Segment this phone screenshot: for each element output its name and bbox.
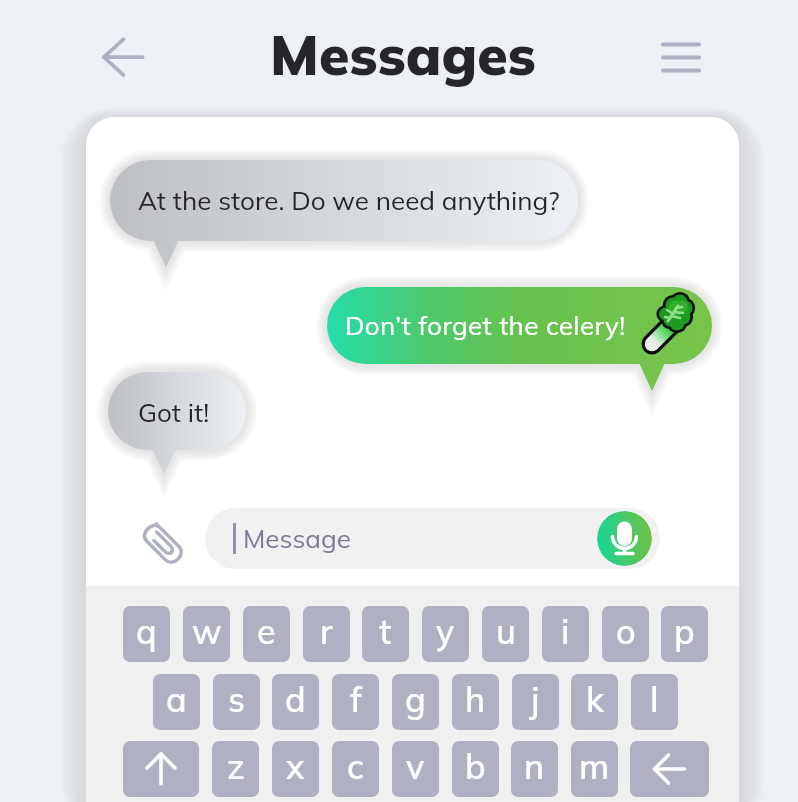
button[interactable]: r xyxy=(303,606,350,662)
button[interactable]: t xyxy=(362,606,409,662)
button[interactable]: j xyxy=(512,674,559,730)
staticText: l xyxy=(650,678,659,721)
staticText: t xyxy=(379,610,392,653)
button[interactable]: s xyxy=(213,674,260,730)
button[interactable]: a xyxy=(153,674,200,730)
button[interactable]: y xyxy=(422,606,469,662)
staticText: j xyxy=(531,678,540,721)
staticText: i xyxy=(561,610,570,653)
button[interactable]: c xyxy=(332,741,379,797)
staticText: p xyxy=(674,610,695,653)
staticText: Don’t forget the celery! xyxy=(345,309,626,342)
button[interactable]: u xyxy=(482,606,529,662)
button[interactable]: h xyxy=(452,674,499,730)
staticText: u xyxy=(496,610,516,653)
button[interactable]: d xyxy=(272,674,319,730)
staticText: s xyxy=(228,678,245,721)
button[interactable]: Don’t forget the celery! xyxy=(301,261,738,417)
button[interactable]: Shift xyxy=(123,741,199,797)
button[interactable]: Record voice message xyxy=(597,511,652,566)
button[interactable]: Backspace xyxy=(630,741,709,797)
staticText: Messages xyxy=(270,19,536,88)
button[interactable]: Message xyxy=(205,508,660,569)
button[interactable]: Got it! xyxy=(86,346,272,500)
staticText: e xyxy=(257,610,276,653)
button[interactable]: m xyxy=(571,741,618,797)
staticText: z xyxy=(227,745,245,788)
staticText: y xyxy=(436,610,455,653)
button[interactable]: n xyxy=(511,741,558,797)
button[interactable]: o xyxy=(602,606,649,662)
button[interactable]: x xyxy=(272,741,319,797)
button[interactable]: z xyxy=(212,741,259,797)
staticText: Got it! xyxy=(138,396,210,429)
button[interactable]: Menu xyxy=(648,26,714,92)
staticText: m xyxy=(579,745,610,788)
staticText: b xyxy=(465,745,486,788)
button[interactable]: q xyxy=(123,606,170,662)
button[interactable]: l xyxy=(631,674,678,730)
button[interactable]: e xyxy=(243,606,290,662)
button[interactable]: At the store. Do we need anything? xyxy=(86,134,604,293)
button[interactable]: w xyxy=(183,606,230,662)
staticText: d xyxy=(285,678,306,721)
staticText: k xyxy=(586,678,604,721)
button[interactable]: g xyxy=(392,674,439,730)
button[interactable]: v xyxy=(392,741,439,797)
staticText: c xyxy=(347,745,364,788)
staticText: g xyxy=(405,678,426,721)
staticText: At the store. Do we need anything? xyxy=(138,184,560,217)
staticText: x xyxy=(286,745,305,788)
button[interactable]: p xyxy=(661,606,708,662)
staticText: a xyxy=(166,678,187,721)
staticText: n xyxy=(524,745,545,788)
staticText: f xyxy=(350,678,362,721)
button[interactable]: Attach file xyxy=(134,515,192,573)
button[interactable]: b xyxy=(452,741,499,797)
staticText: r xyxy=(320,610,333,653)
button[interactable]: k xyxy=(571,674,618,730)
staticText: w xyxy=(192,610,222,653)
staticText: h xyxy=(465,678,486,721)
staticText: v xyxy=(406,745,425,788)
staticText: q xyxy=(136,610,157,653)
staticText: Message xyxy=(243,522,351,555)
button[interactable]: f xyxy=(332,674,379,730)
button[interactable]: Back xyxy=(86,27,150,91)
staticText: o xyxy=(616,610,636,653)
button[interactable]: i xyxy=(542,606,589,662)
